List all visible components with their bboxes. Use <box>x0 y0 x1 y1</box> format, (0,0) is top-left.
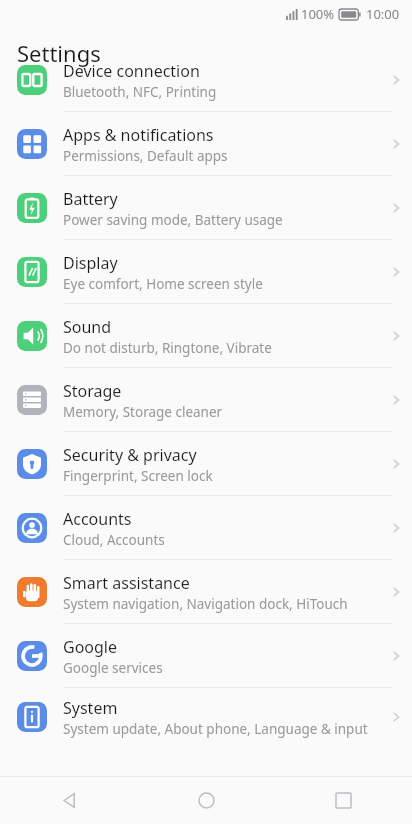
staticText: Do not disturb, Ringtone, Vibrate <box>63 339 272 357</box>
staticText: System <box>63 697 118 719</box>
staticText: Power saving mode, Battery usage <box>63 211 283 229</box>
staticText: Memory, Storage cleaner <box>63 403 223 421</box>
staticText: 10:00 <box>366 5 400 23</box>
staticText: Security & privacy <box>63 444 197 466</box>
staticText: 100% <box>301 5 335 23</box>
button[interactable]: Display <box>0 240 412 304</box>
staticText: Permissions, Default apps <box>63 147 228 165</box>
staticText: Apps & notifications <box>63 124 214 146</box>
staticText: Accounts <box>63 508 132 530</box>
button[interactable]: Device connection <box>0 48 412 112</box>
staticText: Cloud, Accounts <box>63 531 165 549</box>
button[interactable]: System <box>0 688 412 746</box>
staticText: Eye comfort, Home screen style <box>63 275 263 293</box>
button[interactable]: Back <box>0 776 138 824</box>
staticText: System update, About phone, Language & i… <box>63 720 368 738</box>
staticText: Sound <box>63 316 112 338</box>
staticText: Settings <box>17 38 101 68</box>
button[interactable]: Accounts <box>0 496 412 560</box>
staticText: Storage <box>63 380 122 402</box>
button[interactable]: Smart assistance <box>0 560 412 624</box>
staticText: Fingerprint, Screen lock <box>63 467 213 485</box>
button[interactable]: Security & privacy <box>0 432 412 496</box>
staticText: Google <box>63 636 118 658</box>
staticText: Smart assistance <box>63 572 190 594</box>
button[interactable]: Apps & notifications <box>0 112 412 176</box>
button[interactable]: Battery <box>0 176 412 240</box>
button[interactable]: Recent apps <box>275 776 412 824</box>
staticText: System navigation, Navigation dock, HiTo… <box>63 595 348 613</box>
button[interactable]: Google <box>0 624 412 688</box>
staticText: Display <box>63 252 118 274</box>
staticText: Bluetooth, NFC, Printing <box>63 83 217 101</box>
button[interactable]: Sound <box>0 304 412 368</box>
staticText: Battery <box>63 188 118 210</box>
staticText: Device connection <box>63 60 200 82</box>
staticText: Google services <box>63 659 163 677</box>
button[interactable]: Home <box>138 776 275 824</box>
button[interactable]: Storage <box>0 368 412 432</box>
